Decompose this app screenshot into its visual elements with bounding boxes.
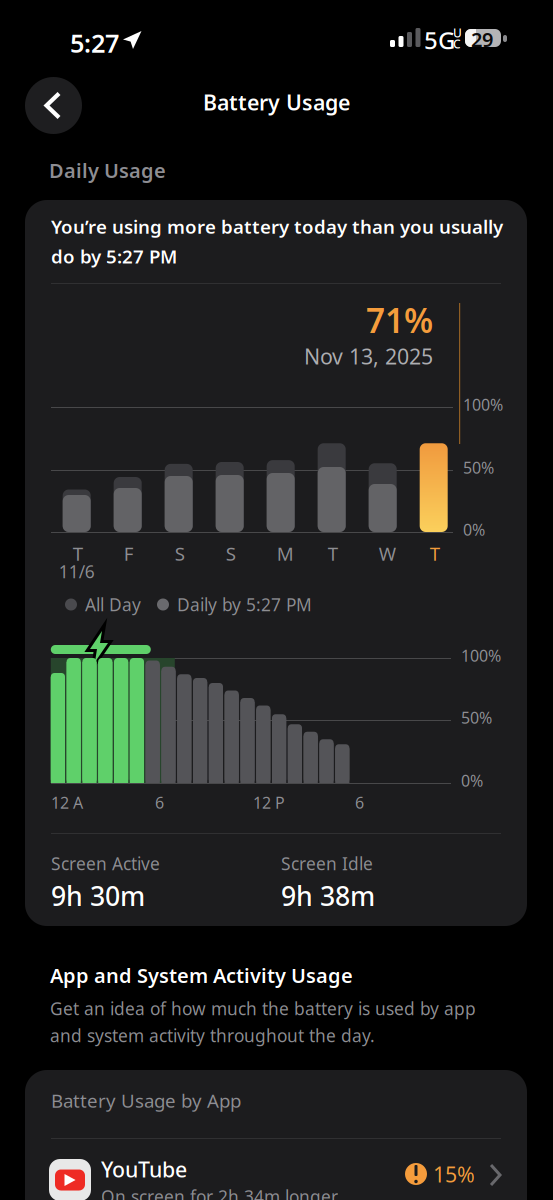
- staticText: You’re using more battery today than you…: [51, 214, 503, 239]
- staticText: 50%: [461, 707, 492, 728]
- staticText: 9h 30m: [51, 878, 145, 913]
- staticText: 5G: [424, 24, 455, 56]
- staticText: Daily by 5:27 PM: [177, 593, 312, 616]
- staticText: 12 A: [51, 792, 83, 813]
- staticText: T: [328, 541, 338, 566]
- staticText: 50%: [463, 457, 494, 478]
- button[interactable]: Back: [25, 77, 82, 134]
- staticText: T: [73, 541, 83, 566]
- staticText: App and System Activity Usage: [50, 962, 353, 989]
- staticText: Battery Usage by App: [51, 1088, 241, 1113]
- staticText: 71%: [366, 298, 433, 342]
- staticText: On screen for 2h 34m longer: [101, 1185, 338, 1200]
- button[interactable]: YouTube: [25, 1139, 527, 1200]
- staticText: and system activity throughout the day.: [50, 1024, 375, 1047]
- staticText: 100%: [463, 394, 503, 415]
- staticText: 0%: [463, 519, 485, 540]
- staticText: 100%: [461, 645, 501, 666]
- staticText: C: [453, 36, 461, 52]
- staticText: 6: [355, 792, 364, 813]
- staticText: 15%: [433, 1160, 475, 1188]
- staticText: S: [175, 541, 185, 566]
- staticText: All Day: [85, 593, 141, 616]
- staticText: 9h 38m: [281, 878, 375, 913]
- staticText: Screen Idle: [281, 852, 373, 875]
- staticText: F: [124, 541, 134, 566]
- staticText: S: [226, 541, 236, 566]
- staticText: Battery Usage: [203, 88, 350, 116]
- staticText: 5:27: [70, 26, 119, 60]
- staticText: 6: [155, 792, 164, 813]
- staticText: 29: [471, 26, 493, 53]
- staticText: 12 P: [253, 792, 285, 813]
- staticText: 11/6: [59, 560, 95, 583]
- staticText: do by 5:27 PM: [51, 244, 177, 269]
- staticText: W: [379, 541, 396, 566]
- staticText: T: [430, 541, 440, 566]
- staticText: Get an idea of how much the battery is u…: [50, 997, 476, 1020]
- staticText: M: [277, 541, 294, 566]
- staticText: U: [453, 25, 462, 41]
- staticText: YouTube: [101, 1155, 187, 1183]
- staticText: Nov 13, 2025: [304, 342, 433, 370]
- staticText: Daily Usage: [49, 157, 166, 184]
- staticText: 0%: [461, 770, 483, 791]
- staticText: Screen Active: [51, 852, 160, 875]
